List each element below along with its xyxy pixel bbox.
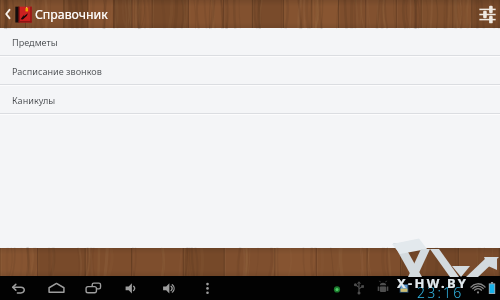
staticText: 23:16 xyxy=(417,283,464,300)
button[interactable]: Расписание звонков xyxy=(0,57,500,86)
button[interactable]: Предметы xyxy=(0,28,500,57)
staticText: X-HW.BY xyxy=(397,274,469,292)
staticText: Расписание звонков xyxy=(12,65,102,77)
staticText: Справочник xyxy=(35,6,108,23)
button[interactable]: Каникулы xyxy=(0,86,500,115)
staticText: Каникулы xyxy=(12,94,56,106)
button[interactable]: Settings xyxy=(474,0,500,28)
staticText: Предметы xyxy=(12,36,58,48)
button[interactable]: Back xyxy=(0,0,13,28)
